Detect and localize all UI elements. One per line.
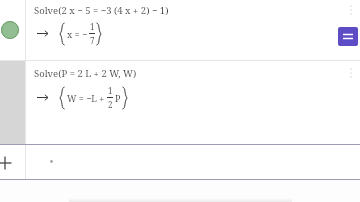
staticText: W = −L +: [67, 92, 105, 104]
staticText: Solve(2 x − 5 = −3 (4 x + 2) − 1): [34, 4, 169, 17]
staticText: P: [115, 92, 121, 104]
other: More options: [346, 3, 356, 17]
button[interactable]: Show or hide row 2: [0, 61, 25, 145]
staticText: 2: [108, 99, 113, 110]
staticText: 1: [90, 21, 95, 32]
button[interactable]: Add row: [0, 145, 25, 180]
button[interactable]: Keyboard: [338, 27, 358, 46]
other: More options: [346, 66, 356, 80]
staticText: x = −: [67, 28, 88, 40]
button[interactable]: Show or hide row 1: [0, 0, 25, 61]
staticText: 7: [90, 35, 95, 46]
button[interactable]: [26, 145, 360, 180]
staticText: Solve(P = 2 L + 2 W, W): [34, 67, 137, 80]
staticText: 1: [108, 85, 113, 96]
